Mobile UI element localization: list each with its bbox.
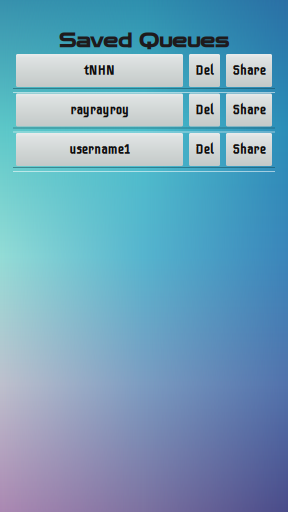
staticText: Del	[195, 63, 214, 78]
staticText: Del	[195, 102, 214, 118]
staticText: rayrayroy	[70, 102, 129, 118]
staticText: tNHN	[84, 63, 115, 78]
button[interactable]: Share	[226, 54, 272, 87]
staticText: username1	[69, 142, 130, 157]
button[interactable]: Del	[189, 133, 220, 166]
staticText: Share	[233, 142, 265, 157]
button[interactable]: rayrayroy	[16, 93, 183, 126]
button[interactable]: Del	[189, 93, 220, 126]
button[interactable]: Del	[189, 54, 220, 87]
staticText: Share	[233, 102, 265, 118]
button[interactable]: Share	[226, 133, 272, 166]
staticText: Share	[233, 63, 265, 78]
staticText: Del	[195, 142, 214, 157]
staticText: Saved Queues	[59, 30, 229, 52]
button[interactable]: Share	[226, 93, 272, 126]
button[interactable]: tNHN	[16, 54, 183, 87]
button[interactable]: username1	[16, 133, 183, 166]
